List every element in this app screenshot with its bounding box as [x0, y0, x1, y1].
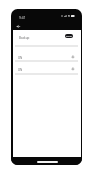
- button[interactable]: Restore: [72, 68, 74, 70]
- button[interactable]: [13, 50, 81, 63]
- button[interactable]: [13, 30, 81, 45]
- button[interactable]: [13, 62, 81, 75]
- button[interactable]: Done: [65, 34, 73, 38]
- staticText: ON: [18, 56, 23, 60]
- staticText: ON: [18, 68, 23, 72]
- staticText: Done: [66, 35, 72, 38]
- staticText: 9:41: [19, 15, 26, 19]
- button[interactable]: Restore: [72, 56, 74, 58]
- button[interactable]: Back: [15, 23, 21, 29]
- staticText: Backup: [19, 36, 30, 40]
